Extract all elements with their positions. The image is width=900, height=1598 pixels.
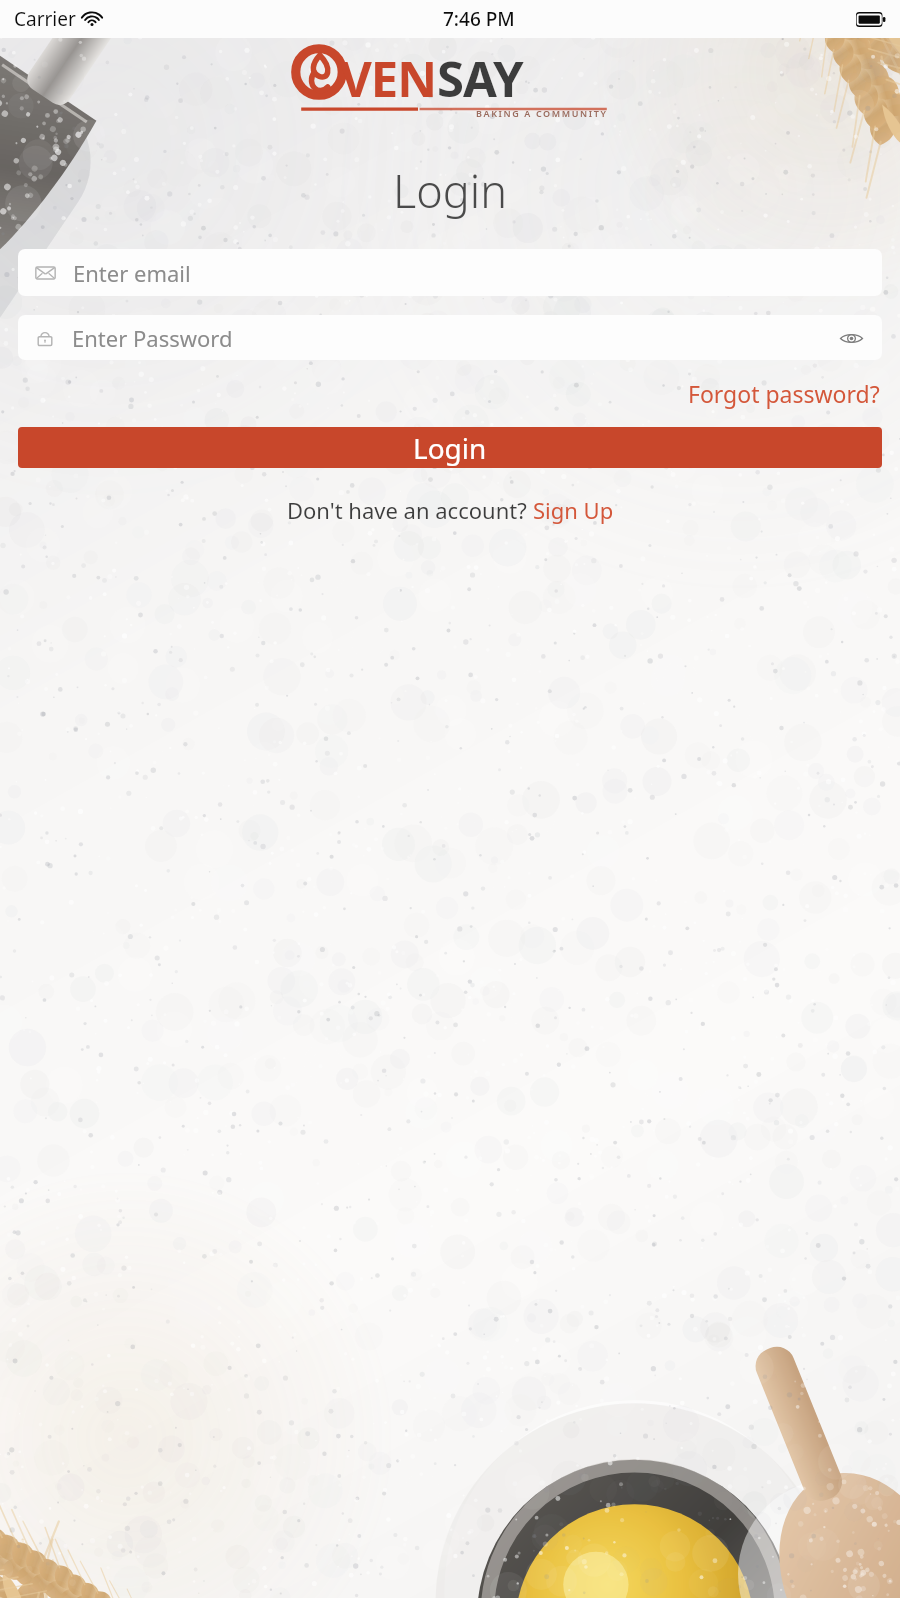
button[interactable]: Login <box>18 427 882 468</box>
staticText: BAKING A COMMUNITY <box>476 107 608 119</box>
staticText: Enter email <box>73 258 191 288</box>
staticText: Enter Password <box>72 323 834 353</box>
button[interactable]: Forgot password? <box>686 374 882 413</box>
staticText: Login <box>413 429 487 467</box>
button[interactable]: Sign Up <box>533 495 614 525</box>
button[interactable]: Enter email <box>18 249 882 296</box>
button[interactable]: Show password <box>834 321 868 355</box>
staticText: Don't have an account? <box>287 495 533 525</box>
staticText: SAY <box>437 45 523 112</box>
staticText: Forgot password? <box>688 378 880 409</box>
staticText: Login <box>0 160 900 221</box>
staticText: Carrier <box>14 6 76 32</box>
staticText: 7:46 PM <box>443 6 515 32</box>
staticText: Sign Up <box>533 495 614 525</box>
button[interactable]: Enter Password <box>18 315 882 360</box>
staticText: VEN <box>340 45 437 112</box>
